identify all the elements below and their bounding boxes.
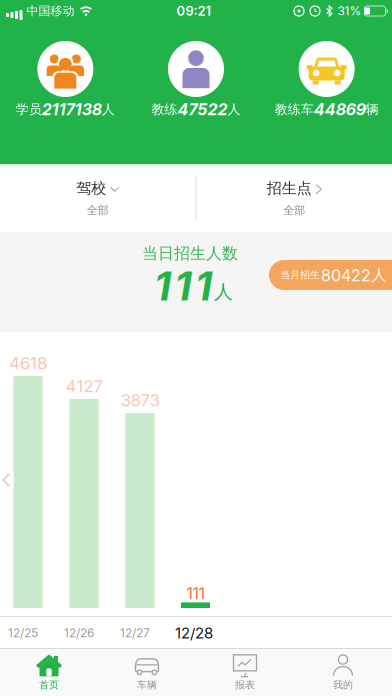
button[interactable]: 我的	[294, 649, 392, 696]
staticText: 12/26	[64, 626, 94, 640]
staticText: 12/28	[175, 624, 213, 642]
staticText: 44869	[314, 100, 366, 119]
button[interactable]: 12/27	[109, 618, 161, 648]
staticText: 2117138	[42, 100, 102, 119]
staticText: 报表	[235, 679, 255, 691]
staticText: 我的	[333, 679, 353, 691]
button[interactable]: 驾校	[0, 164, 195, 232]
staticText: 全部	[283, 203, 305, 217]
staticText: 驾校	[76, 179, 106, 197]
staticText: 学员	[16, 101, 42, 117]
button[interactable]: 当月招生	[269, 260, 392, 290]
staticText: 1	[174, 262, 191, 310]
staticText: 31%	[337, 4, 361, 18]
staticText: 12/25	[8, 626, 38, 640]
staticText: 当日招生人数	[142, 244, 238, 263]
staticText: 人	[214, 280, 233, 304]
button[interactable]: 12/28	[166, 618, 222, 648]
staticText: 招生点	[267, 179, 312, 197]
button[interactable]: 车辆	[98, 649, 196, 696]
staticText: 111	[186, 584, 204, 603]
staticText: 4618	[9, 353, 47, 373]
staticText: 首页	[39, 679, 59, 691]
staticText: 教练	[151, 101, 177, 117]
staticText: 09:21	[176, 3, 210, 19]
staticText: 80422人	[321, 265, 387, 285]
staticText: 当月招生	[280, 269, 320, 281]
staticText: 人	[102, 101, 115, 117]
staticText: 1	[195, 262, 212, 310]
staticText: 4127	[65, 376, 102, 396]
staticText: 中国移动	[26, 4, 74, 18]
button[interactable]: 12/25	[0, 618, 49, 648]
staticText: 车辆	[137, 679, 157, 691]
staticText: 3873	[120, 390, 159, 410]
staticText: 12/27	[120, 626, 150, 640]
button[interactable]: 招生点	[196, 164, 392, 232]
button[interactable]: 首页	[0, 649, 98, 696]
staticText: 辆	[366, 101, 379, 117]
staticText: 全部	[87, 203, 109, 217]
button[interactable]: 报表	[196, 649, 294, 696]
staticText: 教练车	[275, 101, 314, 117]
button[interactable]: 12/26	[53, 618, 105, 648]
staticText: 1	[154, 262, 171, 310]
staticText: 人	[227, 101, 240, 117]
staticText: 47522	[177, 100, 227, 119]
